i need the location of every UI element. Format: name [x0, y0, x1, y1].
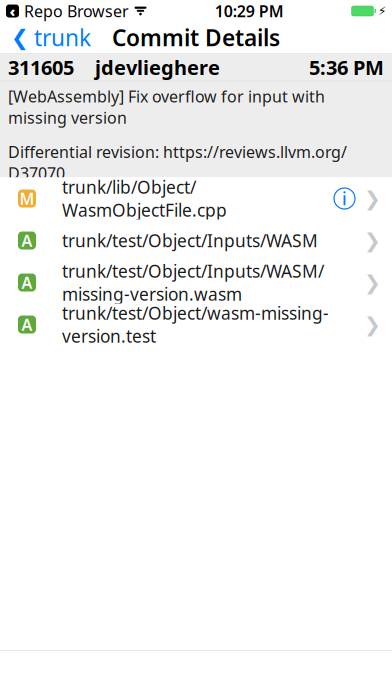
staticText: trunk/lib/Object/WasmObjectFile.cpp	[62, 175, 227, 221]
staticText: 10:29 PM	[215, 0, 284, 22]
staticText: A	[21, 230, 32, 251]
staticText: A	[21, 272, 32, 293]
staticText: ‹	[9, 1, 15, 21]
staticText: 5:36 PM	[309, 54, 384, 81]
staticText: trunk/test/Object/Inputs/WASM	[62, 229, 318, 252]
staticText: trunk	[34, 22, 91, 52]
staticText: Commit Details	[112, 22, 280, 52]
staticText: [WebAssembly] Fix overflow for input wit…	[8, 86, 325, 128]
staticText: trunk/test/Object/wasm-missing-version.t…	[62, 301, 329, 347]
staticText: ❯	[364, 313, 381, 336]
staticText: ⚡︎	[378, 4, 386, 18]
staticText: i	[342, 187, 347, 210]
staticText: ❯	[364, 187, 381, 210]
staticText: Repo Browser	[24, 0, 129, 22]
button[interactable]: M	[0, 177, 392, 219]
button[interactable]: A	[0, 303, 392, 345]
staticText: jdevlieghere	[95, 54, 220, 81]
staticText: M	[19, 188, 34, 209]
staticText: ❯	[364, 271, 381, 294]
button[interactable]: ❮	[0, 16, 99, 58]
staticText: Differential revision: https://reviews.l…	[8, 141, 347, 184]
staticText: A	[21, 314, 32, 335]
staticText: 311605	[8, 54, 74, 81]
button[interactable]: A	[0, 219, 392, 261]
staticText: ❮	[11, 25, 29, 50]
staticText: ❯	[364, 229, 381, 252]
staticText: trunk/test/Object/Inputs/WASM/missing-ve…	[62, 259, 324, 305]
button[interactable]: A	[0, 261, 392, 303]
